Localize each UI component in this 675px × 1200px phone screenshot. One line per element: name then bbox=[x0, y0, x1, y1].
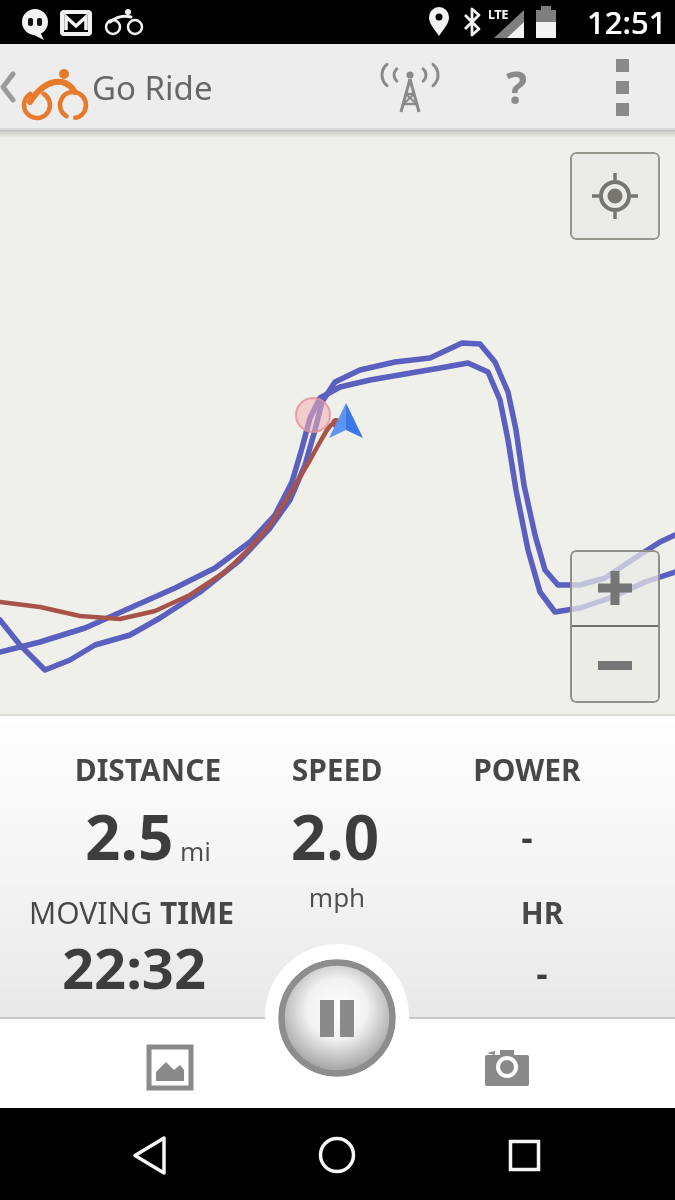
staticText: TIME bbox=[160, 892, 235, 933]
staticText: 2.5 bbox=[85, 794, 174, 878]
button[interactable] bbox=[367, 44, 453, 130]
button[interactable] bbox=[116, 1121, 184, 1189]
staticText: LTE bbox=[488, 6, 509, 22]
button[interactable] bbox=[570, 550, 660, 625]
staticText: ? bbox=[506, 57, 527, 117]
staticText: DISTANCE bbox=[38, 749, 258, 790]
staticText: 2.0 bbox=[235, 794, 435, 878]
button[interactable] bbox=[570, 627, 660, 703]
button[interactable] bbox=[136, 1034, 204, 1102]
button[interactable] bbox=[473, 1034, 541, 1102]
button[interactable] bbox=[490, 1121, 558, 1189]
button[interactable] bbox=[584, 44, 660, 130]
button[interactable] bbox=[0, 44, 92, 130]
staticText: Go Ride bbox=[92, 65, 213, 110]
button[interactable] bbox=[303, 1121, 371, 1189]
button[interactable] bbox=[570, 152, 660, 240]
staticText: - bbox=[442, 948, 642, 997]
staticText: 12:51 bbox=[587, 1, 667, 43]
staticText: - bbox=[427, 812, 627, 861]
staticText: mi bbox=[180, 833, 212, 868]
staticText: POWER bbox=[427, 749, 627, 790]
staticText: MOVING bbox=[29, 892, 160, 933]
button[interactable] bbox=[278, 959, 396, 1077]
button[interactable]: ? bbox=[473, 44, 559, 130]
staticText: HR bbox=[442, 892, 642, 933]
staticText: 22:32 bbox=[24, 929, 244, 1005]
staticText: SPEED bbox=[237, 749, 437, 790]
staticText: mph bbox=[237, 879, 437, 914]
